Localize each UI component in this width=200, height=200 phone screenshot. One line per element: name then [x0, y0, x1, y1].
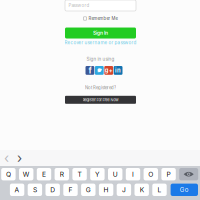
- staticText: g+: [105, 67, 113, 74]
- button[interactable]: Sign in with Facebook: [85, 66, 94, 75]
- staticText: Y: [95, 170, 100, 178]
- staticText: W: [23, 170, 30, 178]
- button[interactable]: Next field: [13, 150, 26, 166]
- button[interactable]: Sign in with LinkedIn: [114, 66, 122, 75]
- button[interactable]: Q: [1, 168, 16, 180]
- button[interactable]: J: [117, 184, 131, 196]
- button[interactable]: K: [134, 184, 149, 196]
- button[interactable]: W: [19, 168, 33, 180]
- button[interactable]: G: [81, 184, 95, 196]
- staticText: G: [86, 186, 91, 194]
- button[interactable]: L: [152, 184, 167, 196]
- staticText: ›: [17, 150, 22, 166]
- staticText: Q: [6, 170, 11, 178]
- button[interactable]: Sign in with Twitter: [95, 66, 104, 75]
- staticText: Password: [68, 3, 89, 8]
- staticText: S: [33, 186, 37, 194]
- staticText: Not Registered?: [85, 85, 116, 90]
- staticText: P: [167, 170, 171, 178]
- staticText: T: [78, 170, 82, 178]
- staticText: Sign in using: [86, 56, 114, 62]
- button[interactable]: Remember Me: [65, 13, 136, 24]
- staticText: A: [15, 186, 20, 194]
- staticText: R: [60, 170, 64, 178]
- button[interactable]: A: [10, 184, 24, 196]
- staticText: F: [68, 186, 72, 194]
- button[interactable]: I: [126, 168, 140, 180]
- button[interactable]: T: [72, 168, 87, 180]
- button[interactable]: Recover username or password: [62, 38, 139, 46]
- staticText: L: [157, 186, 161, 194]
- staticText: Remember Me: [89, 16, 118, 21]
- button[interactable]: Sign in with Google: [104, 66, 113, 75]
- staticText: I: [132, 170, 134, 178]
- button[interactable]: O: [144, 168, 158, 180]
- staticText: Sign In: [93, 30, 108, 36]
- button[interactable]: Register For Free Now: [65, 96, 136, 104]
- staticText: Recover username or password: [64, 40, 136, 45]
- button[interactable]: P: [161, 168, 176, 180]
- staticText: D: [50, 186, 55, 194]
- button[interactable]: U: [108, 168, 122, 180]
- button[interactable]: H: [99, 184, 113, 196]
- staticText: Register For Free Now: [82, 97, 118, 102]
- staticText: O: [148, 170, 153, 178]
- button[interactable]: Go: [171, 184, 198, 196]
- staticText: in: [115, 67, 121, 74]
- staticText: U: [113, 170, 118, 178]
- button[interactable]: Sign In: [65, 27, 136, 38]
- staticText: J: [122, 186, 126, 194]
- staticText: E: [42, 170, 46, 178]
- button[interactable]: D: [45, 184, 60, 196]
- button[interactable]: S: [28, 184, 42, 196]
- button[interactable]: Previous field: [0, 150, 13, 166]
- staticText: K: [140, 186, 144, 194]
- staticText: Go: [180, 186, 189, 193]
- button[interactable]: Y: [90, 168, 105, 180]
- button[interactable]: E: [37, 168, 51, 180]
- button[interactable]: R: [55, 168, 69, 180]
- staticText: H: [104, 186, 109, 194]
- button[interactable]: F: [63, 184, 78, 196]
- staticText: ‹: [4, 150, 9, 166]
- staticText: f: [88, 65, 91, 75]
- button[interactable]: Show password: [179, 168, 198, 180]
